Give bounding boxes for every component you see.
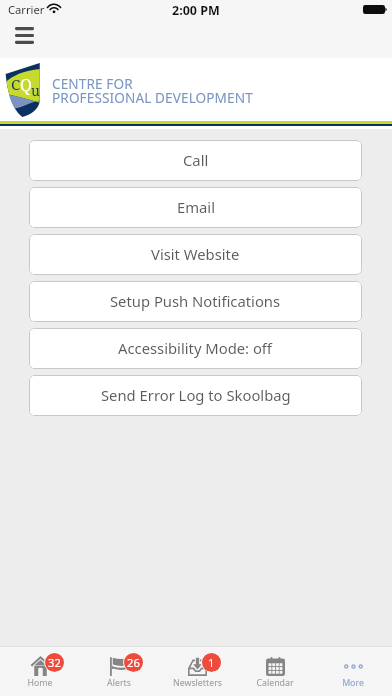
staticText: Alerts: [107, 677, 131, 689]
staticText: Call: [183, 150, 209, 170]
staticText: 26: [127, 655, 140, 670]
staticText: C: [11, 74, 21, 94]
staticText: Calendar: [256, 677, 294, 689]
staticText: Carrier: [8, 2, 45, 17]
staticText: Q: [20, 74, 32, 96]
staticText: 1: [208, 655, 215, 670]
staticText: 2:00 PM: [172, 2, 220, 19]
staticText: More: [342, 677, 364, 689]
button[interactable]: More: [314, 647, 392, 696]
button[interactable]: Open navigation menu: [6, 22, 42, 53]
staticText: 32: [48, 655, 61, 670]
button[interactable]: Calendar: [236, 647, 314, 696]
staticText: Send Error Log to Skoolbag: [101, 385, 291, 405]
button[interactable]: 1: [158, 647, 236, 696]
button[interactable]: 26: [79, 647, 158, 696]
button[interactable]: Visit Website: [29, 234, 362, 275]
button[interactable]: Email: [29, 187, 362, 228]
button[interactable]: Setup Push Notifications: [29, 281, 362, 322]
staticText: Newsletters: [173, 677, 222, 689]
staticText: CENTRE FOR: [52, 74, 133, 93]
staticText: Home: [27, 677, 53, 689]
staticText: PROFESSIONAL DEVELOPMENT: [52, 88, 253, 107]
button[interactable]: 32: [0, 647, 79, 696]
button[interactable]: Call: [29, 140, 362, 181]
button[interactable]: Accessibility Mode: off: [29, 328, 362, 369]
staticText: Email: [177, 197, 215, 217]
staticText: Accessibility Mode: off: [118, 338, 273, 358]
staticText: Visit Website: [151, 244, 240, 264]
staticText: Setup Push Notifications: [110, 291, 281, 311]
staticText: u: [31, 81, 40, 100]
button[interactable]: Send Error Log to Skoolbag: [29, 375, 362, 416]
